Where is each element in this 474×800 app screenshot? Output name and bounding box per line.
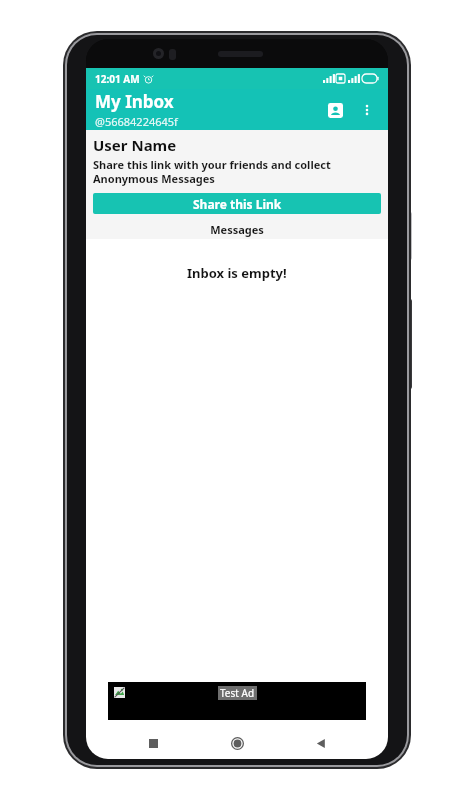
button[interactable]: Share this Link (93, 193, 381, 214)
staticText: Share this Link (193, 196, 282, 212)
staticText: Messages (210, 222, 264, 237)
staticText: User Name (93, 135, 177, 155)
button[interactable]: Profile (318, 93, 352, 127)
button[interactable]: More options (352, 95, 382, 125)
staticText: @56684224645f (95, 114, 178, 129)
button[interactable]: Advertisement (108, 682, 366, 720)
staticText: 12:01 AM (95, 72, 140, 86)
button[interactable]: Recent apps (136, 728, 170, 759)
button[interactable]: Back (304, 728, 338, 759)
button[interactable]: Home (220, 728, 254, 759)
staticText: Share this link with your friends and co… (93, 157, 381, 186)
staticText: Inbox is empty! (187, 264, 287, 282)
staticText: Test Ad (220, 686, 255, 700)
staticText: My Inbox (95, 90, 174, 113)
